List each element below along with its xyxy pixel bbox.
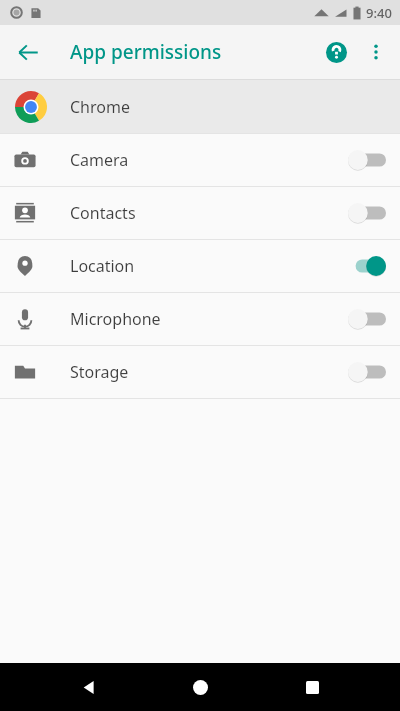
button[interactable]: Chrome bbox=[0, 80, 400, 133]
staticText: Storage bbox=[70, 361, 129, 383]
button[interactable]: Help bbox=[316, 32, 356, 72]
button[interactable]: Location bbox=[0, 240, 400, 292]
button[interactable]: Back bbox=[8, 32, 48, 72]
staticText: Contacts bbox=[70, 202, 136, 224]
button[interactable]: More options bbox=[356, 32, 396, 72]
staticText: Camera bbox=[70, 149, 129, 171]
button[interactable]: Back bbox=[64, 663, 112, 711]
staticText: 9:40 bbox=[366, 4, 392, 22]
staticText: Location bbox=[70, 255, 135, 277]
button[interactable]: Storage bbox=[0, 346, 400, 398]
staticText: App permissions bbox=[70, 39, 222, 65]
button[interactable]: Camera bbox=[0, 134, 400, 186]
button[interactable]: Recent apps bbox=[288, 663, 336, 711]
staticText: Microphone bbox=[70, 308, 161, 330]
staticText: Chrome bbox=[70, 96, 130, 118]
button[interactable]: Home bbox=[176, 663, 224, 711]
button[interactable]: Microphone bbox=[0, 293, 400, 345]
button[interactable]: Contacts bbox=[0, 187, 400, 239]
